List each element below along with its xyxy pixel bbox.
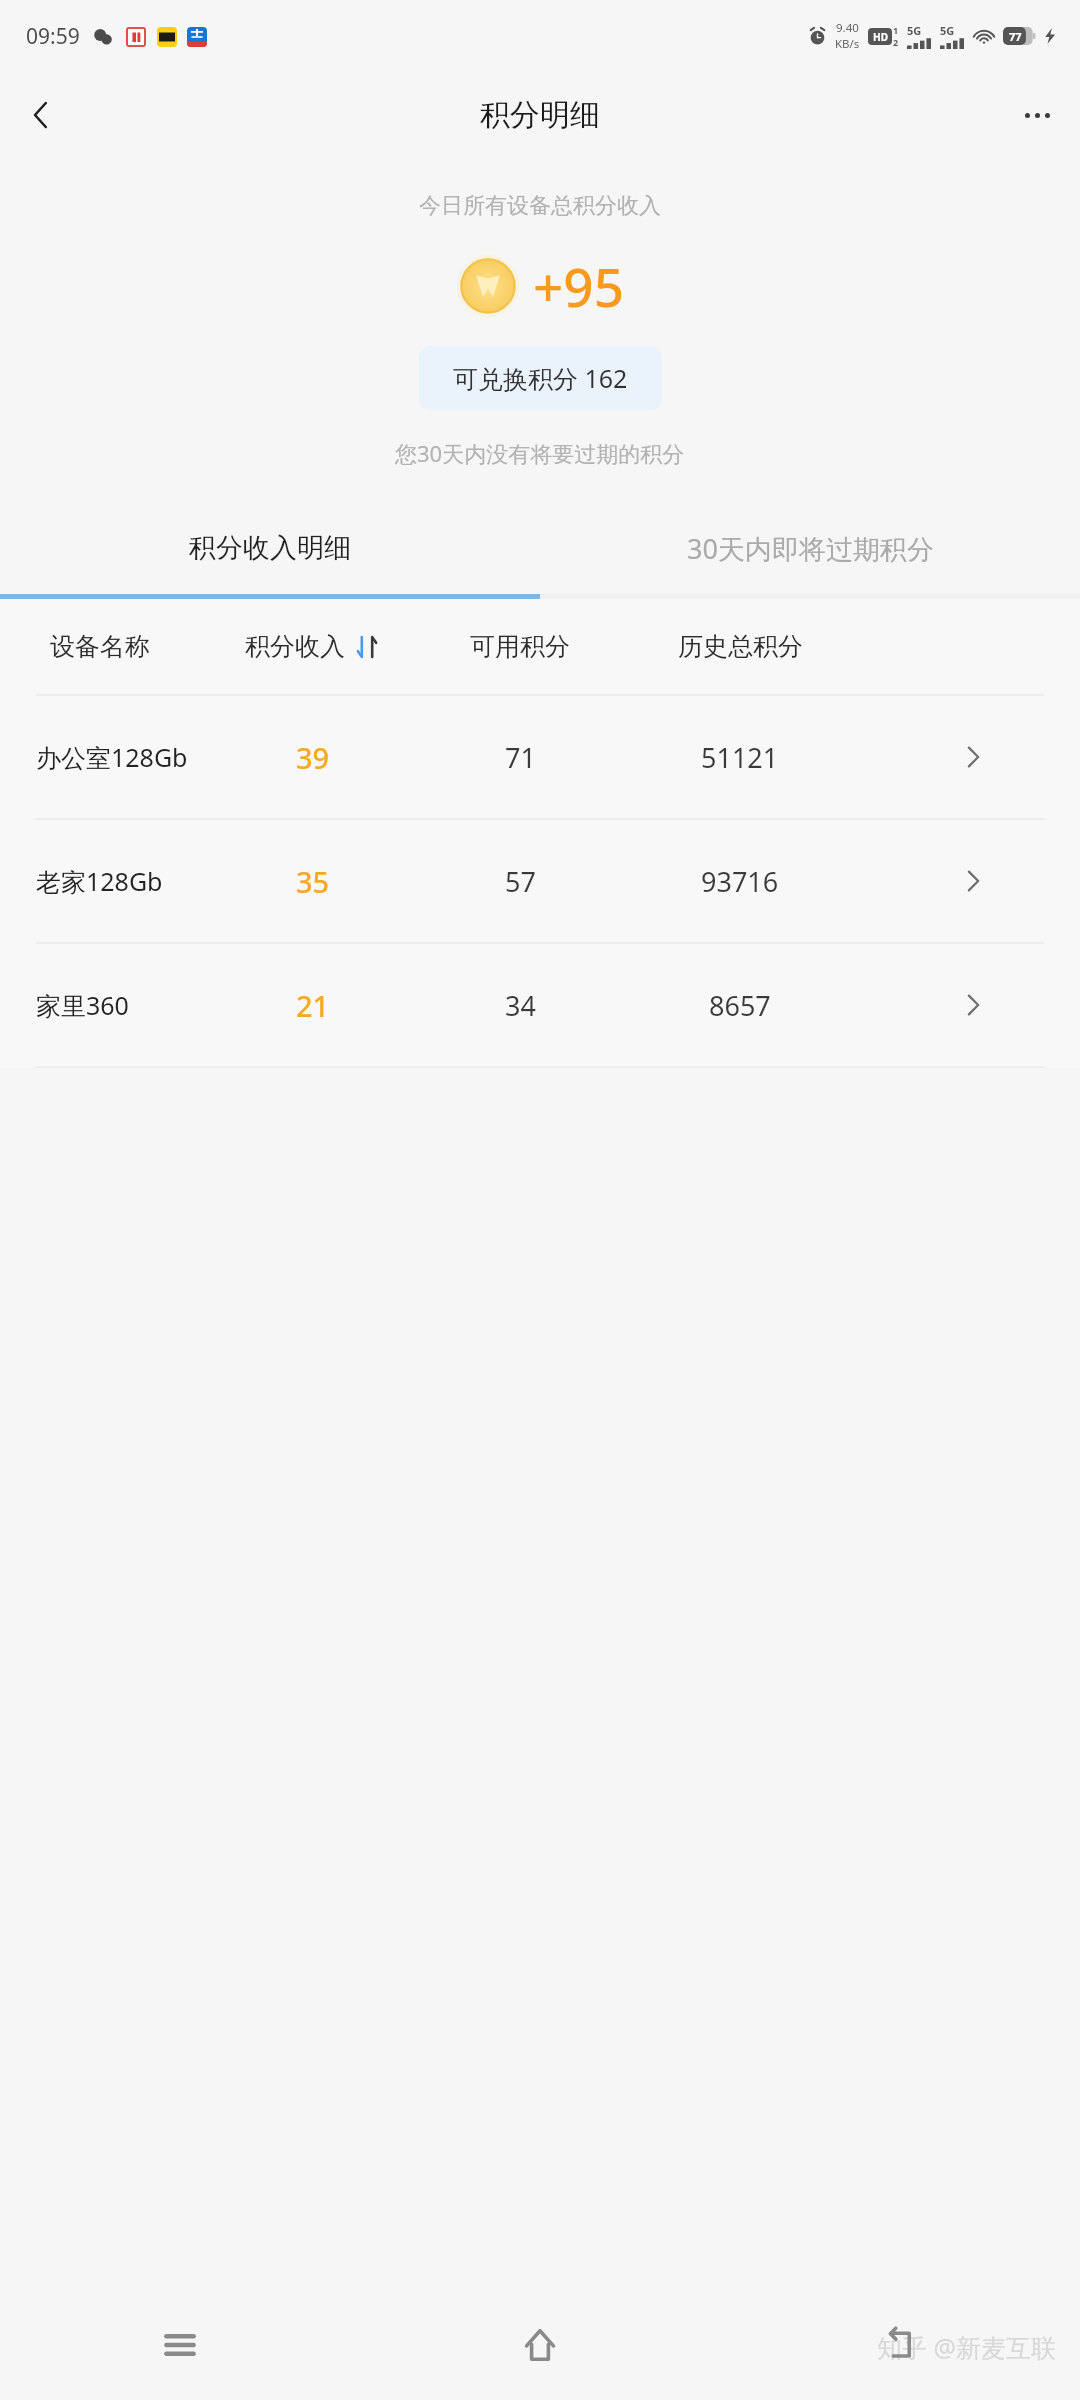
button[interactable]: Back [10,84,72,146]
staticText: 77 [1009,29,1022,44]
staticText: 您30天内没有将要过期的积分 [395,438,685,468]
staticText: 9.40 [836,20,859,36]
staticText: 34 [505,987,536,1024]
staticText: 5G [940,23,955,38]
staticText: 39 [296,738,330,777]
button[interactable]: Recent apps [0,2290,360,2400]
button[interactable]: Back [720,2290,1080,2400]
staticText: 8657 [709,987,771,1024]
staticText: 93716 [701,863,779,900]
staticText: HD [873,30,888,44]
staticText: 57 [505,863,536,900]
button[interactable]: 老家128Gb [0,820,1080,942]
staticText: 家里360 [36,988,129,1022]
staticText: 30天内即将过期积分 [687,530,934,567]
staticText: 71 [505,739,536,776]
staticText: 51121 [701,739,779,776]
staticText: 21 [296,986,330,1025]
staticText: 5G [907,23,922,38]
button[interactable]: Sort [354,634,380,660]
staticText: 老家128Gb [36,864,163,898]
staticText: 2 [893,36,899,48]
staticText: 办公室128Gb [36,740,188,774]
staticText: 1 [893,24,899,36]
button[interactable]: 办公室128Gb [0,696,1080,818]
staticText: 可用积分 [470,631,570,662]
staticText: 今日所有设备总积分收入 [419,192,661,220]
button[interactable]: 可兑换积分 162 [419,346,662,410]
button[interactable]: More options [1008,86,1066,144]
staticText: +95 [533,250,624,322]
staticText: KB/s [835,36,860,52]
button[interactable]: Home [360,2290,720,2400]
staticText: 积分收入 [245,631,345,662]
staticText: 知乎 @新麦互联 [877,2330,1056,2364]
staticText: 历史总积分 [678,631,803,662]
staticText: 积分明细 [480,96,600,134]
button[interactable]: 30天内即将过期积分 [540,502,1080,594]
staticText: 35 [296,862,330,901]
staticText: 积分收入明细 [189,531,351,565]
button[interactable]: 家里360 [0,944,1080,1066]
staticText: 可兑换积分 162 [453,361,628,395]
staticText: 设备名称 [50,631,150,662]
button[interactable]: 积分收入明细 [0,502,540,594]
staticText: 09:59 [26,22,80,51]
